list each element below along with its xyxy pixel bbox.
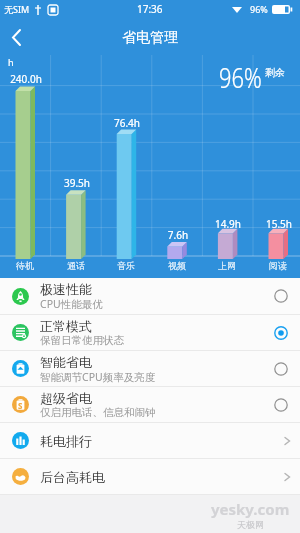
staticText: 极速性能	[40, 281, 92, 297]
staticText: 76.4h	[102, 116, 152, 130]
staticText: S	[18, 400, 23, 411]
staticText: 阅读	[253, 260, 300, 271]
staticText: 后台高耗电	[40, 469, 282, 485]
staticText: 超级省电	[40, 390, 92, 406]
staticText: 通话	[51, 260, 101, 271]
staticText: 保留日常使用状态	[40, 334, 124, 347]
staticText: 7.6h	[153, 228, 203, 242]
staticText: 正常模式	[40, 318, 92, 334]
staticText: 省电管理	[122, 29, 178, 47]
staticText: 待机	[0, 260, 50, 271]
button[interactable]: 正常模式	[0, 315, 300, 350]
staticText: 96%	[250, 3, 268, 15]
staticText: 39.5h	[52, 176, 102, 190]
staticText: 音乐	[101, 260, 151, 271]
button[interactable]: 智能省电	[0, 351, 300, 386]
staticText: 上网	[202, 260, 252, 271]
staticText: 剩余	[265, 66, 285, 79]
staticText: 15.5h	[254, 217, 300, 231]
staticText: 天极网	[237, 519, 264, 530]
staticText: yesky.com	[211, 499, 290, 519]
button[interactable]: S	[0, 387, 300, 422]
staticText: 14.9h	[203, 217, 253, 231]
button[interactable]: 耗电排行	[0, 423, 300, 458]
button[interactable]: 极速性能	[0, 278, 300, 314]
staticText: 视频	[152, 260, 202, 271]
staticText: 耗电排行	[40, 433, 282, 449]
staticText: 240.0h	[1, 72, 51, 86]
staticText: CPU性能最优	[40, 297, 103, 311]
button[interactable]: 后台高耗电	[0, 459, 300, 494]
staticText: 仅启用电话、信息和闹钟	[40, 406, 156, 419]
staticText: 96%	[219, 58, 262, 96]
staticText: 无SIM	[4, 3, 30, 15]
staticText: 智能调节CPU频率及亮度	[40, 370, 156, 384]
staticText: 17:36	[137, 2, 163, 16]
staticText: 智能省电	[40, 354, 92, 370]
staticText: h	[8, 56, 14, 68]
button[interactable]	[0, 20, 34, 55]
